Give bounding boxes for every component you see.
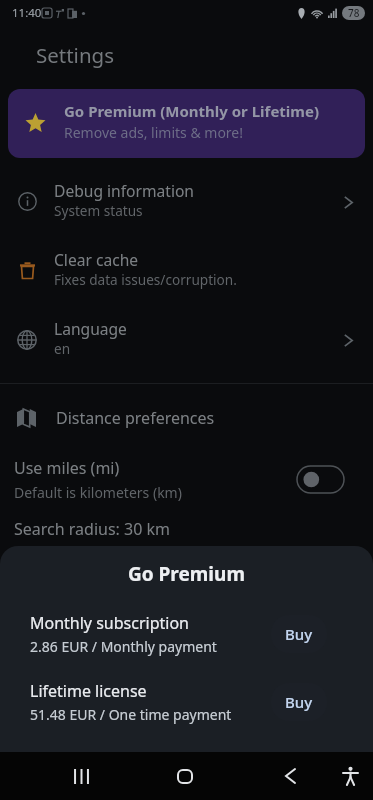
staticText: Buy bbox=[285, 692, 313, 712]
staticText: 51.48 EUR / One time payment bbox=[30, 705, 232, 724]
staticText: Buy bbox=[285, 624, 313, 644]
staticText: Monthly subscription bbox=[30, 612, 189, 634]
button[interactable]: Debug information bbox=[0, 168, 373, 237]
staticText: Remove ads, limits & more! bbox=[64, 123, 244, 142]
button[interactable]: Language bbox=[0, 306, 373, 375]
button[interactable]: Recent apps bbox=[57, 752, 105, 800]
staticText: 2.86 EUR / Monthly payment bbox=[30, 637, 217, 656]
staticText: Language bbox=[54, 318, 127, 339]
button[interactable]: Buy bbox=[271, 615, 327, 653]
button[interactable]: Buy bbox=[271, 683, 327, 721]
staticText: en bbox=[54, 339, 71, 358]
staticText: Go Premium (Monthly or Lifetime) bbox=[64, 101, 320, 121]
button[interactable]: Back bbox=[266, 752, 314, 800]
staticText: System status bbox=[54, 201, 143, 220]
staticText: Use miles (mi) bbox=[14, 457, 120, 479]
staticText: 11:40 bbox=[12, 5, 42, 21]
staticText: Lifetime license bbox=[30, 680, 147, 702]
staticText: Distance preferences bbox=[56, 407, 215, 429]
staticText: Clear cache bbox=[54, 249, 139, 270]
staticText: Settings bbox=[36, 41, 115, 69]
button[interactable]: Accessibility bbox=[326, 752, 373, 800]
button[interactable]: Home bbox=[161, 752, 209, 800]
staticText: Search radius: 30 km bbox=[14, 518, 171, 540]
button[interactable]: Go Premium (Monthly or Lifetime) bbox=[8, 89, 365, 158]
staticText: Default is kilometers (km) bbox=[14, 483, 182, 502]
button[interactable]: Use miles (mi) bbox=[0, 449, 373, 509]
button[interactable]: Clear cache bbox=[0, 237, 373, 306]
staticText: Fixes data issues/corruption. bbox=[54, 270, 237, 289]
staticText: Debug information bbox=[54, 180, 195, 201]
staticText: Go Premium bbox=[128, 561, 245, 587]
staticText: 78 bbox=[348, 6, 360, 20]
